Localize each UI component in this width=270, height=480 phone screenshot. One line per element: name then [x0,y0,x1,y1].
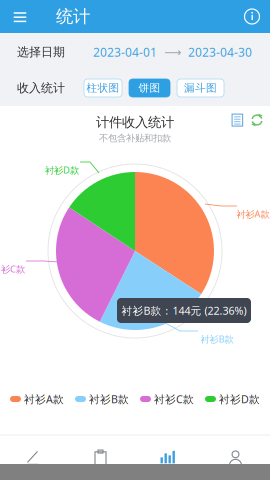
staticText: 不包含补贴和扣款 [99,132,171,144]
staticText: 衬衫B款 [89,392,129,406]
staticText: 衬衫D款 [219,392,260,406]
button[interactable]: Info [234,0,270,33]
button[interactable]: Statistics [134,435,201,479]
button[interactable]: 2023-04-30 [188,44,252,60]
button[interactable]: Profile [201,435,270,479]
button[interactable]: 柱状图 [77,79,122,97]
staticText: ⟶ [164,45,181,59]
button[interactable]: 漏斗图 [170,79,224,97]
button[interactable]: Refresh [250,113,264,127]
staticText: 衬衫A款 [236,208,269,220]
button[interactable]: Edit [0,435,67,479]
staticText: 选择日期 [17,45,65,59]
staticText: 计件收入统计 [96,114,174,130]
staticText: 衬衫B款 [200,333,233,345]
staticText: 衬衫C款 [154,392,194,406]
staticText: 衬衫B款：144元 (22.36%) [121,303,246,318]
staticText: 衬衫D款 [45,164,79,176]
staticText: 衬衫A款 [24,392,64,406]
button[interactable]: Detail list [231,113,244,127]
button[interactable]: 2023-04-01 [93,44,157,60]
button[interactable]: 饼图 [122,79,170,97]
staticText: 衫C款 [1,263,25,275]
button[interactable]: Records [67,435,134,479]
staticText: 收入统计 [17,81,65,95]
staticText: 2023-04-30 [188,44,252,60]
staticText: 统计 [56,6,90,27]
staticText: 柱状图 [86,81,119,94]
button[interactable]: Menu [0,0,40,33]
staticText: 2023-04-01 [93,44,157,60]
staticText: 漏斗图 [184,81,217,94]
staticText: 饼图 [138,81,160,94]
